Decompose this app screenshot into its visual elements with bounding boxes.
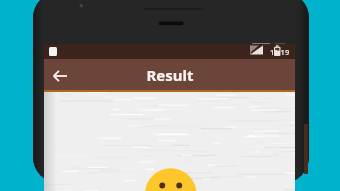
staticText: 11:19 — [270, 47, 290, 57]
staticText: Result — [146, 65, 194, 85]
button[interactable]: Back — [48, 64, 72, 88]
